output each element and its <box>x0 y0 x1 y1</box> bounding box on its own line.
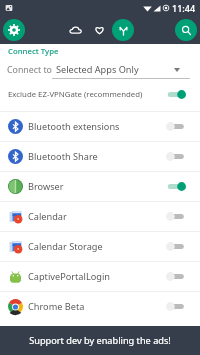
staticText: Bluetooth extensions <box>28 120 120 133</box>
button[interactable]: Connect type <box>112 19 134 41</box>
staticText: Connect to <box>7 64 52 76</box>
staticText: Chrome Beta <box>28 300 85 313</box>
button[interactable]: Selected Apps Only <box>56 63 200 76</box>
button[interactable]: Calendar Storage <box>0 232 200 261</box>
button[interactable]: Calendar <box>0 202 200 231</box>
button[interactable]: Search <box>175 19 197 41</box>
button[interactable]: Chrome Beta <box>0 292 200 321</box>
staticText: Calendar Storage <box>28 240 103 253</box>
staticText: Calendar <box>28 210 67 223</box>
staticText: Support dev by enabling the ads! <box>29 334 171 347</box>
staticText: Connect Type <box>8 46 59 57</box>
button[interactable]: Support dev by enabling the ads! <box>0 326 200 355</box>
button[interactable]: Browser <box>0 172 200 201</box>
staticText: Exclude EZ-VPNGate (recommended) <box>8 89 143 100</box>
staticText: Selected Apps Only <box>56 63 139 76</box>
button[interactable]: CaptivePortalLogin <box>0 262 200 291</box>
button[interactable]: Favorites <box>88 19 110 41</box>
button[interactable]: Cloud servers <box>64 19 86 41</box>
button[interactable]: Bluetooth Share <box>0 142 200 171</box>
staticText: Browser <box>28 180 64 193</box>
staticText: Bluetooth Share <box>28 150 98 163</box>
button[interactable]: Bluetooth extensions <box>0 112 200 141</box>
staticText: CaptivePortalLogin <box>28 270 110 283</box>
button[interactable]: Exclude EZ-VPNGate (recommended) <box>0 86 200 102</box>
button[interactable]: Settings <box>3 19 25 41</box>
staticText: 11:44 <box>172 2 196 14</box>
